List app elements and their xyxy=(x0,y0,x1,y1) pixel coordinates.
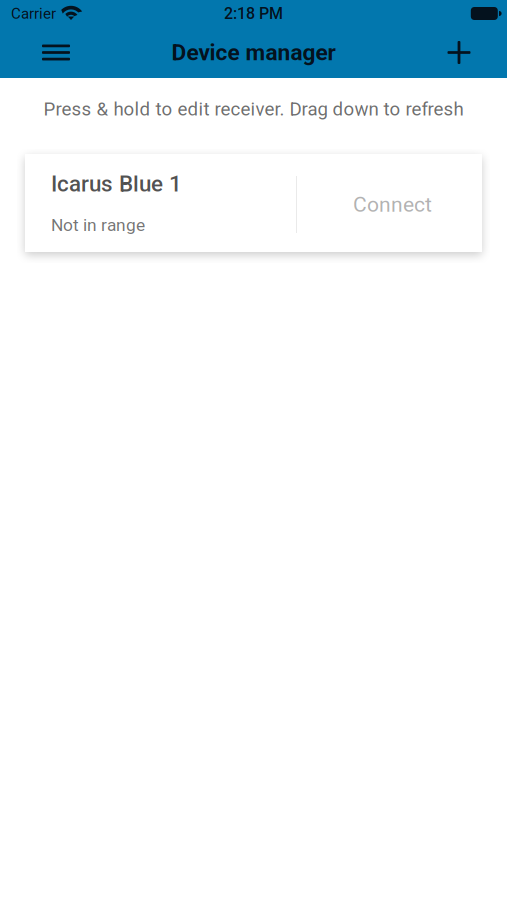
staticText: Connect xyxy=(353,192,432,217)
staticText: Device manager xyxy=(171,39,335,66)
staticText: Not in range xyxy=(51,215,145,235)
button[interactable]: Connect xyxy=(297,154,482,252)
staticText: Icarus Blue 1 xyxy=(51,171,182,197)
staticText: 2:18 PM xyxy=(224,4,283,23)
staticText: Carrier xyxy=(11,5,56,22)
staticText: Press & hold to edit receiver. Drag down… xyxy=(43,98,463,120)
button[interactable]: Menu xyxy=(28,27,84,78)
button[interactable]: Icarus Blue 1 xyxy=(25,154,296,252)
button[interactable]: Add receiver xyxy=(431,27,487,78)
